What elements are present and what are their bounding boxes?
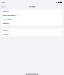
button[interactable]: Wallpaper [1,21,63,25]
staticText: Wallpaper [3,23,10,24]
button[interactable]: Privacy [1,28,63,32]
staticText: Privacy [3,30,9,31]
button[interactable]: Sounds [1,32,63,36]
staticText: General [3,11,9,12]
button[interactable]: General [1,10,63,13]
button[interactable]: Display & Brightness [1,14,63,17]
staticText: Sounds [3,34,9,35]
staticText: 9:41 [2,1,5,3]
staticText: Settings [28,6,35,8]
button[interactable]: Back [0,5,7,9]
staticText: Back [2,6,6,8]
button[interactable]: Accessibility [1,17,63,21]
staticText: Accessibility [3,19,11,20]
staticText: Display & Brightness [3,15,17,16]
